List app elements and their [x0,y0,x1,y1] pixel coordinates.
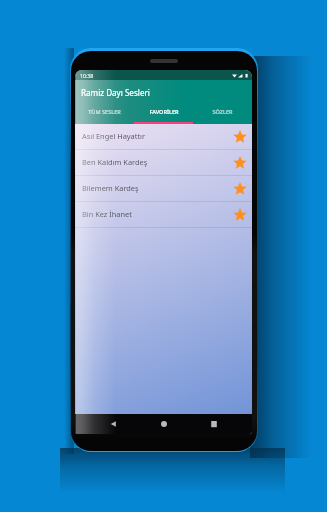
button[interactable]: Home [159,419,169,429]
button[interactable]: Recent apps [209,419,219,429]
button[interactable]: Ben Kaldım Kardeş [75,150,252,176]
button[interactable]: Back [109,419,119,429]
staticText: Bin Kez İhanet [82,209,233,219]
staticText: 10:38 [80,72,94,79]
staticText: SÖZLER [212,108,233,116]
button[interactable]: Bilemem Kardeş [75,176,252,202]
button[interactable]: Bin Kez İhanet [75,202,252,228]
button[interactable]: FAVORİLER [134,108,193,116]
staticText: Bilemem Kardeş [82,183,233,193]
staticText: FAVORİLER [149,108,179,116]
staticText: Ramiz Dayı Sesleri [81,87,150,98]
staticText: Ben Kaldım Kardeş [82,157,233,167]
button[interactable]: Asıl Engel Hayattır [75,124,252,150]
staticText: TÜM SESLER [88,108,121,116]
staticText: Asıl Engel Hayattır [82,131,233,141]
button[interactable]: TÜM SESLER [75,108,134,116]
button[interactable]: SÖZLER [193,108,252,116]
